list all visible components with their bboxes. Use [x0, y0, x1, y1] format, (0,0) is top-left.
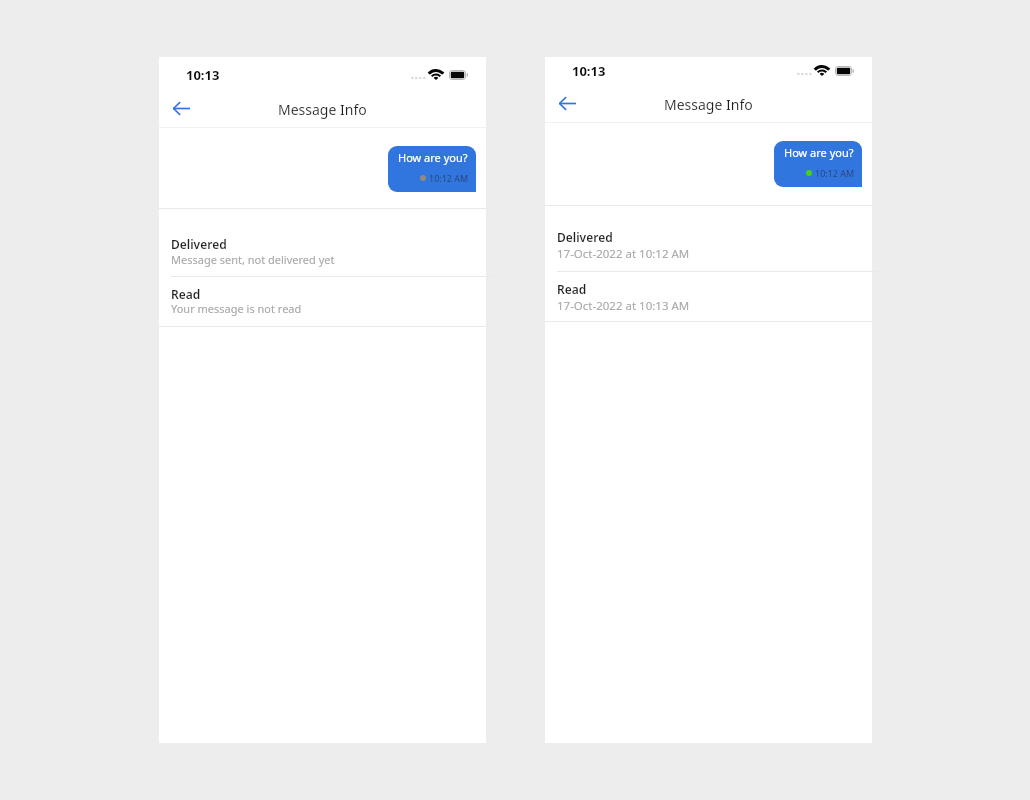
- button[interactable]: How are you?: [774, 141, 862, 187]
- staticText: Read: [171, 286, 201, 302]
- staticText: Message Info: [278, 100, 367, 119]
- button[interactable]: Delivered: [159, 209, 486, 277]
- staticText: Your message is not read: [171, 301, 302, 316]
- staticText: 10:12 AM: [429, 172, 469, 184]
- button[interactable]: Delivered: [545, 206, 872, 272]
- staticText: 10:13: [572, 62, 606, 80]
- staticText: 10:12 AM: [815, 167, 855, 179]
- staticText: 10:13: [186, 66, 220, 84]
- staticText: Delivered: [557, 229, 613, 245]
- staticText: Delivered: [171, 236, 227, 252]
- button[interactable]: How are you?: [388, 146, 476, 192]
- staticText: Message Info: [664, 95, 753, 114]
- staticText: Message sent, not delivered yet: [171, 252, 335, 267]
- button[interactable]: Read: [545, 272, 872, 322]
- staticText: 17-Oct-2022 at 10:12 AM: [557, 246, 690, 262]
- staticText: How are you?: [398, 150, 468, 165]
- button[interactable]: Back: [162, 91, 200, 125]
- button[interactable]: Back: [548, 86, 586, 120]
- staticText: 17-Oct-2022 at 10:13 AM: [557, 298, 690, 314]
- staticText: Read: [557, 281, 587, 297]
- button[interactable]: Read: [159, 277, 486, 327]
- staticText: How are you?: [784, 145, 854, 160]
